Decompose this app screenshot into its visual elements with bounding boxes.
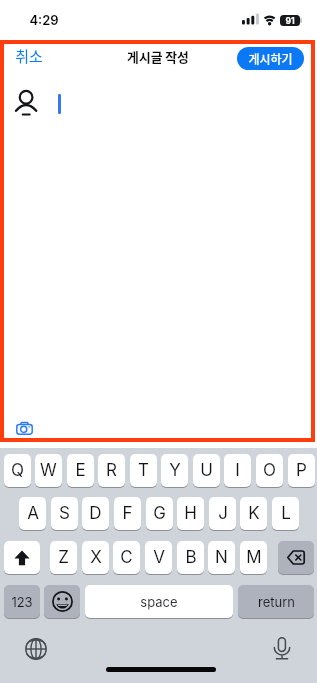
staticText: D — [89, 503, 102, 524]
button[interactable]: S — [51, 497, 78, 530]
button[interactable]: Y — [161, 454, 188, 487]
staticText: 취소 — [15, 45, 43, 67]
staticText: 게시하기 — [248, 50, 293, 67]
button[interactable]: L — [272, 497, 299, 530]
button[interactable]: E — [67, 454, 94, 487]
button[interactable]: V — [145, 541, 172, 574]
staticText: O — [263, 460, 276, 481]
staticText: T — [138, 460, 149, 481]
button[interactable]: B — [177, 541, 204, 574]
staticText: W — [40, 460, 57, 481]
staticText: B — [185, 547, 197, 568]
staticText: H — [184, 503, 197, 524]
button[interactable]: H — [177, 497, 204, 530]
button[interactable]: Q — [4, 454, 31, 487]
button[interactable]: N — [208, 541, 235, 574]
button[interactable] — [278, 541, 314, 574]
button[interactable]: space — [85, 585, 233, 618]
button[interactable] — [274, 637, 290, 660]
button[interactable]: M — [240, 541, 267, 574]
button[interactable]: J — [209, 497, 236, 530]
button[interactable]: return — [238, 585, 314, 618]
staticText: N — [215, 547, 228, 568]
staticText: 91 — [285, 16, 295, 26]
button[interactable]: 취소 — [15, 45, 43, 67]
button[interactable]: Z — [50, 541, 77, 574]
staticText: G — [153, 503, 166, 524]
button[interactable]: R — [98, 454, 125, 487]
staticText: space — [140, 594, 178, 610]
button[interactable]: G — [146, 497, 173, 530]
button[interactable]: T — [130, 454, 157, 487]
button[interactable]: P — [288, 454, 315, 487]
staticText: C — [120, 547, 133, 568]
staticText: P — [296, 460, 307, 481]
button[interactable]: I — [224, 454, 251, 487]
button[interactable]: 123 — [4, 585, 40, 618]
button[interactable]: U — [193, 454, 220, 487]
button[interactable] — [4, 541, 40, 574]
staticText: I — [235, 460, 240, 481]
staticText: S — [59, 503, 70, 524]
button[interactable] — [16, 421, 33, 435]
button[interactable] — [44, 585, 80, 618]
staticText: 123 — [11, 594, 33, 610]
staticText: 4:29 — [29, 12, 59, 28]
staticText: F — [122, 503, 133, 524]
staticText: E — [75, 460, 86, 481]
button[interactable]: O — [256, 454, 283, 487]
button[interactable]: D — [82, 497, 109, 530]
button[interactable] — [25, 638, 47, 660]
staticText: J — [218, 503, 228, 524]
staticText: Z — [58, 547, 69, 568]
button[interactable]: C — [113, 541, 140, 574]
staticText: L — [281, 503, 291, 524]
staticText: A — [27, 503, 39, 524]
staticText: 게시글 작성 — [127, 47, 189, 66]
staticText: Q — [11, 460, 24, 481]
staticText: X — [90, 547, 102, 568]
staticText: U — [200, 460, 213, 481]
staticText: return — [258, 594, 295, 610]
button[interactable]: K — [240, 497, 267, 530]
staticText: K — [248, 503, 260, 524]
button[interactable]: F — [114, 497, 141, 530]
staticText: R — [106, 460, 117, 481]
button[interactable]: X — [82, 541, 109, 574]
button[interactable]: 게시하기 — [237, 47, 304, 70]
button[interactable]: A — [19, 497, 46, 530]
staticText: Y — [169, 460, 181, 481]
staticText: M — [246, 547, 262, 568]
button[interactable]: W — [35, 454, 62, 487]
staticText: V — [153, 547, 165, 568]
